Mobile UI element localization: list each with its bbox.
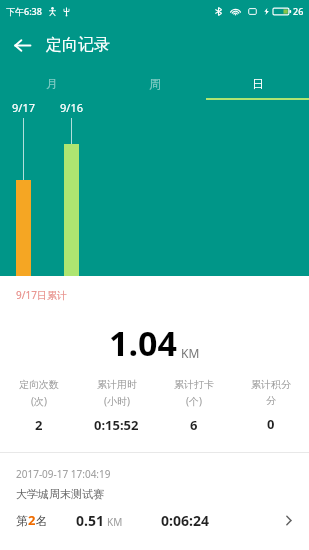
staticText: 1.04 bbox=[109, 320, 177, 366]
staticText: 累计积分 bbox=[251, 378, 291, 391]
staticText: 下午6:38 bbox=[6, 5, 42, 17]
button[interactable]: 月 bbox=[0, 67, 103, 100]
staticText: 月 bbox=[46, 76, 58, 91]
staticText: (次) bbox=[31, 394, 47, 408]
staticText: 分 bbox=[266, 394, 276, 407]
staticText: KM bbox=[181, 345, 200, 361]
staticText: 26 bbox=[293, 5, 304, 17]
button[interactable]: 日 bbox=[206, 67, 309, 100]
button[interactable]: Back bbox=[0, 23, 44, 67]
staticText: 0:06:24 bbox=[161, 511, 209, 530]
staticText: 0 bbox=[267, 415, 275, 433]
staticText: (小时) bbox=[104, 394, 130, 408]
button[interactable]: 2017-09-17 17:04:19 bbox=[0, 453, 309, 541]
staticText: 9/16 bbox=[60, 100, 83, 115]
staticText: 定向次数 bbox=[19, 378, 59, 391]
staticText: 日 bbox=[252, 76, 264, 91]
staticText: 累计用时 bbox=[97, 378, 137, 391]
staticText: 定向记录 bbox=[46, 35, 110, 55]
staticText: (个) bbox=[186, 394, 202, 408]
staticText: 9/17日累计 bbox=[16, 288, 67, 302]
staticText: 9/17 bbox=[12, 100, 35, 115]
staticText: 6 bbox=[190, 416, 198, 434]
other: Open record details bbox=[277, 509, 299, 531]
button[interactable]: 周 bbox=[103, 67, 206, 100]
staticText: 0:15:52 bbox=[94, 416, 139, 434]
staticText: 周 bbox=[149, 76, 161, 91]
staticText: 0.51 bbox=[76, 511, 104, 530]
staticText: 2 bbox=[35, 416, 43, 434]
staticText: 累计打卡 bbox=[174, 378, 214, 391]
staticText: 大学城周末测试赛 bbox=[16, 487, 104, 501]
staticText: KM bbox=[107, 515, 123, 529]
staticText: 2017-09-17 17:04:19 bbox=[16, 467, 111, 481]
staticText: 第2名 bbox=[16, 511, 48, 529]
